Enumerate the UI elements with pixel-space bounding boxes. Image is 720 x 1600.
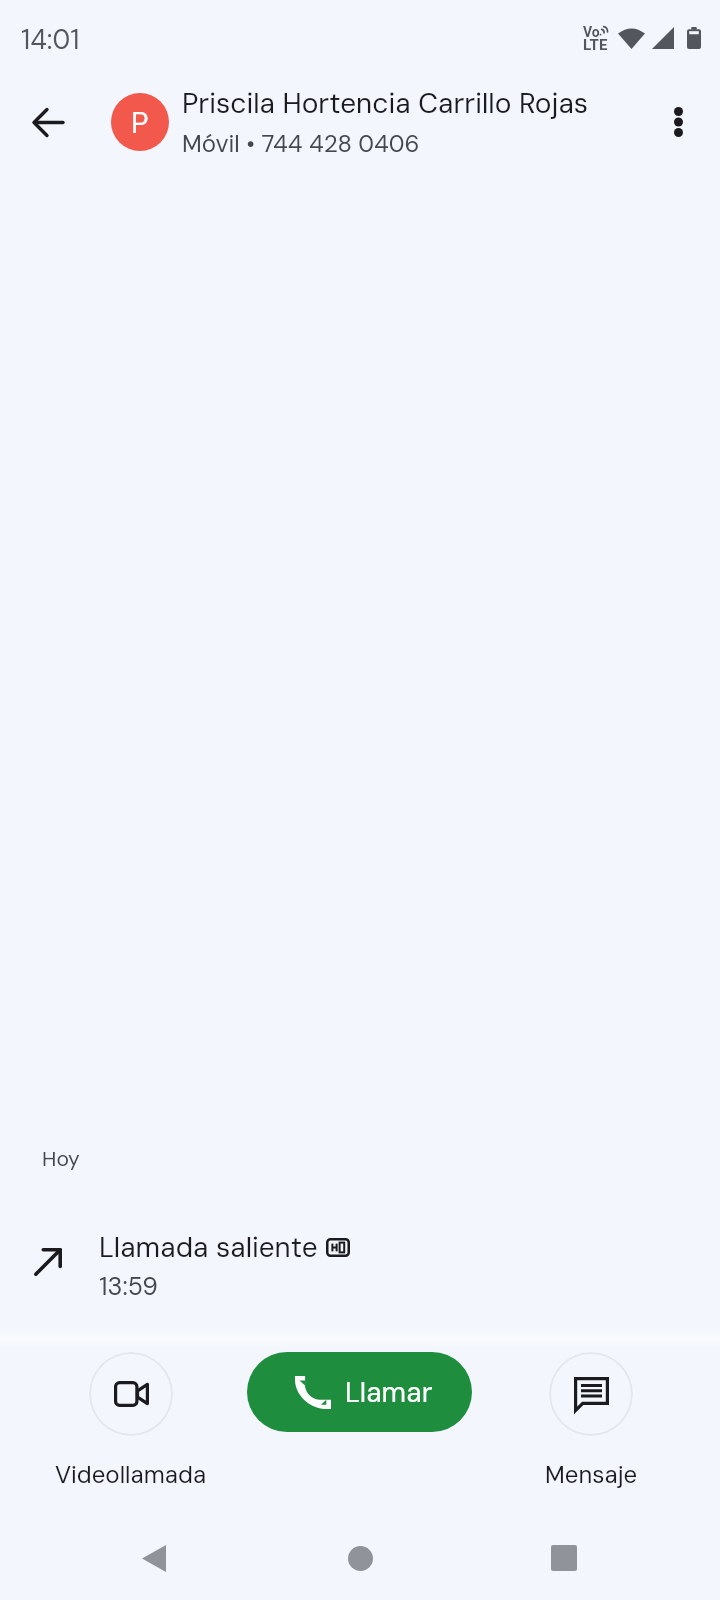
button[interactable]: Back bbox=[10, 84, 86, 160]
staticText: Mensaje bbox=[545, 1459, 638, 1490]
staticText: Llamar bbox=[345, 1374, 433, 1410]
staticText: Hoy bbox=[42, 1145, 80, 1172]
button[interactable]: More options bbox=[640, 84, 716, 160]
button[interactable]: Home bbox=[320, 1518, 400, 1598]
button[interactable]: Mensaje bbox=[506, 1352, 676, 1490]
button[interactable]: Back bbox=[114, 1518, 194, 1598]
staticText: LTE bbox=[583, 36, 608, 54]
staticText: 13:59 bbox=[99, 1270, 158, 1303]
staticText: 14:01 bbox=[21, 22, 80, 57]
button[interactable]: Llamar bbox=[247, 1352, 472, 1432]
button[interactable]: Videollamada bbox=[46, 1352, 216, 1490]
button[interactable]: Llamada saliente 13:59 bbox=[0, 1220, 720, 1320]
staticText: Priscila Hortencia Carrillo Rojas bbox=[182, 85, 589, 121]
staticText: Llamada saliente bbox=[99, 1229, 318, 1265]
staticText: Videollamada bbox=[55, 1459, 207, 1490]
staticText: Móvil • 744 428 0406 bbox=[182, 128, 420, 159]
button[interactable]: Recent apps bbox=[524, 1518, 604, 1598]
staticText: P bbox=[131, 103, 149, 142]
staticText: Vo bbox=[583, 24, 600, 40]
